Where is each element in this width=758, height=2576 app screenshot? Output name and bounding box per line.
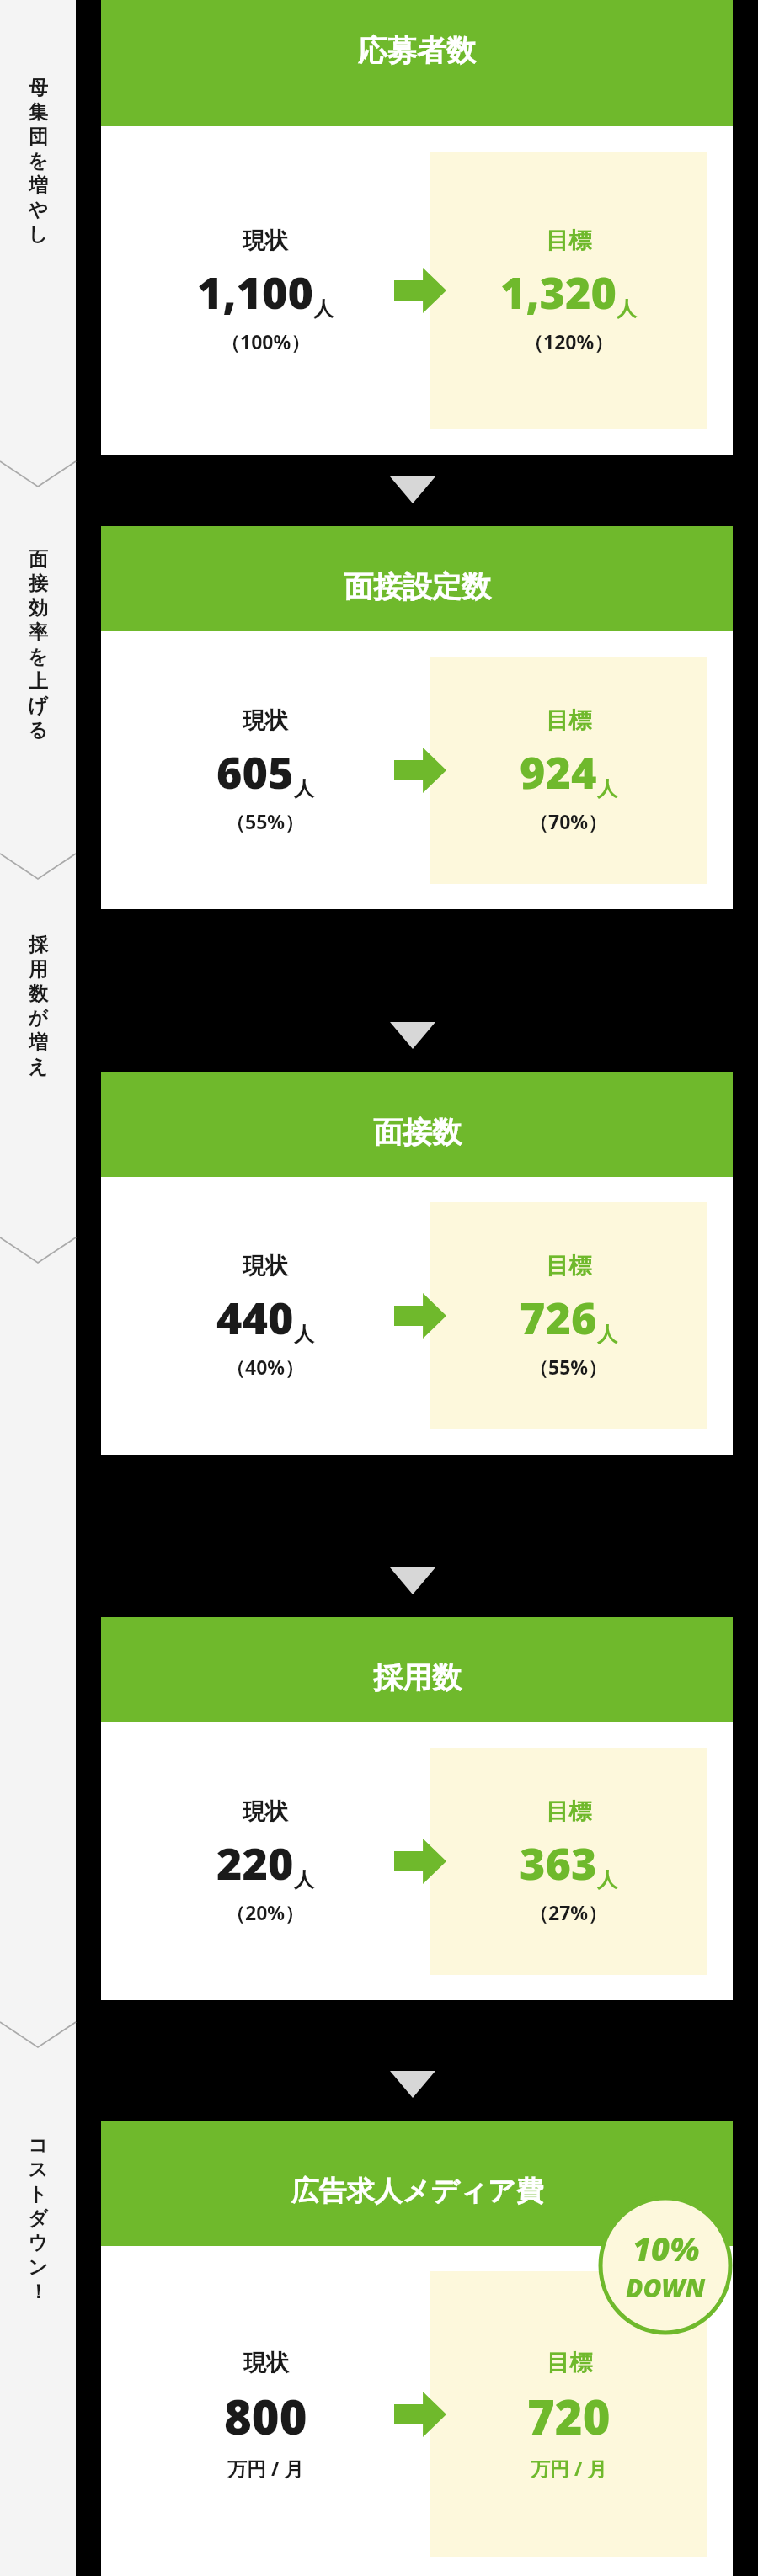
- staticText: 現状: [243, 2349, 289, 2377]
- staticText: 万円 / 月: [227, 2455, 304, 2481]
- staticText: 人: [294, 776, 314, 801]
- staticText: 220: [216, 1833, 294, 1892]
- staticText: げ: [28, 694, 48, 718]
- staticText: （20%）: [226, 1899, 305, 1925]
- staticText: 人: [294, 1322, 314, 1347]
- button[interactable]: 面接設定数: [101, 526, 733, 909]
- staticText: 団: [29, 125, 48, 149]
- staticText: 720: [527, 2384, 611, 2448]
- staticText: る: [28, 718, 48, 742]
- staticText: 集: [29, 100, 48, 125]
- staticText: 採: [29, 933, 48, 957]
- staticText: 応募者数: [358, 32, 476, 69]
- other: leads to: [394, 1293, 446, 1339]
- button[interactable]: 応募者数: [101, 0, 733, 455]
- staticText: 率: [29, 620, 48, 645]
- staticText: 現状: [243, 226, 288, 255]
- other: leads to: [394, 748, 446, 793]
- staticText: 人: [294, 1867, 314, 1892]
- staticText: 726: [520, 1287, 597, 1347]
- staticText: 800: [224, 2384, 307, 2448]
- staticText: え: [28, 1055, 48, 1079]
- staticText: 効: [29, 596, 48, 620]
- staticText: ダ: [28, 2206, 48, 2231]
- staticText: や: [28, 198, 48, 222]
- staticText: 面: [29, 547, 48, 572]
- staticText: 目標: [546, 1252, 591, 1280]
- staticText: 人: [597, 1322, 617, 1347]
- staticText: を: [28, 645, 48, 669]
- staticText: 現状: [243, 1797, 288, 1826]
- staticText: 目標: [546, 706, 591, 735]
- staticText: 363: [520, 1833, 597, 1892]
- other: leads to: [394, 2392, 446, 2437]
- staticText: 増: [29, 173, 48, 198]
- staticText: 目標: [547, 2349, 592, 2377]
- staticText: 面接数: [373, 1114, 462, 1151]
- staticText: 増: [29, 1030, 48, 1055]
- staticText: 人: [597, 1867, 617, 1892]
- staticText: （70%）: [529, 808, 608, 834]
- button[interactable]: 10% DOWN: [598, 2195, 733, 2335]
- staticText: が: [28, 1006, 48, 1030]
- staticText: 現状: [243, 1252, 288, 1280]
- staticText: 1,100: [197, 262, 313, 322]
- staticText: 面接設定数: [344, 568, 491, 605]
- staticText: 目標: [546, 226, 591, 255]
- other: leads to: [394, 1839, 446, 1884]
- staticText: 広告求人メディア費: [291, 2174, 544, 2209]
- staticText: ウ: [28, 2231, 48, 2255]
- staticText: DOWN: [626, 2270, 706, 2305]
- staticText: （27%）: [529, 1899, 608, 1925]
- staticText: ス: [28, 2158, 48, 2182]
- staticText: 数: [29, 982, 48, 1006]
- staticText: （55%）: [529, 1354, 608, 1380]
- other: leads to: [394, 268, 446, 313]
- button[interactable]: 採用数: [101, 1617, 733, 2000]
- staticText: 人: [597, 776, 617, 801]
- staticText: 10%: [633, 2227, 700, 2270]
- button[interactable]: 面接数: [101, 1072, 733, 1455]
- staticText: 目標: [546, 1797, 591, 1826]
- staticText: 現状: [243, 706, 288, 735]
- staticText: （100%）: [221, 328, 311, 354]
- staticText: 万円 / 月: [531, 2455, 607, 2481]
- staticText: 採用数: [373, 1659, 462, 1696]
- button[interactable]: 広告求人メディア費: [101, 2121, 733, 2576]
- staticText: コ: [28, 2133, 48, 2158]
- staticText: 母: [29, 76, 48, 100]
- staticText: 605: [216, 742, 294, 801]
- staticText: し: [28, 222, 48, 247]
- staticText: 924: [520, 742, 597, 801]
- staticText: ！: [29, 2280, 48, 2304]
- staticText: 1,320: [500, 262, 617, 322]
- staticText: （40%）: [226, 1354, 305, 1380]
- staticText: ン: [28, 2255, 48, 2280]
- staticText: 接: [29, 572, 48, 596]
- staticText: （55%）: [226, 808, 305, 834]
- staticText: 用: [29, 957, 48, 982]
- staticText: （120%）: [524, 328, 614, 354]
- staticText: ト: [28, 2182, 48, 2206]
- staticText: を: [28, 149, 48, 173]
- staticText: 上: [29, 669, 48, 694]
- staticText: 人: [313, 296, 334, 322]
- staticText: 440: [216, 1287, 294, 1347]
- staticText: 人: [617, 296, 637, 322]
